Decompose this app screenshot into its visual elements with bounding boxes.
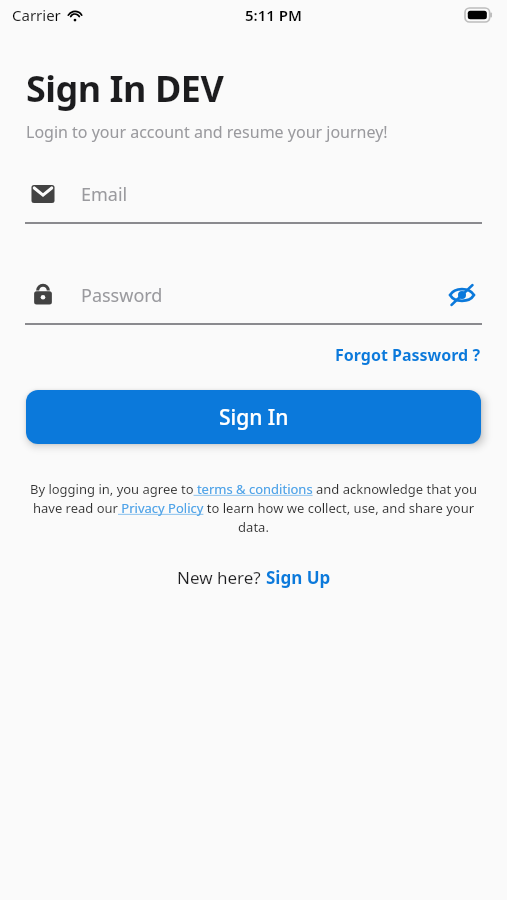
staticText: Password [81,283,163,308]
button[interactable]: Forgot Password ? [335,342,507,368]
staticText: 5:11 PM [245,5,302,25]
button[interactable]: Password [25,275,482,315]
staticText: Carrier [12,5,61,25]
staticText: Email [81,182,128,207]
button[interactable]: Sign Up [266,564,331,591]
staticText: New here? [177,566,266,589]
button[interactable]: Show password [442,275,482,315]
button[interactable]: Email [25,174,482,214]
staticText: Sign Up [266,566,331,589]
staticText: Sign In DEV [26,64,224,113]
button[interactable]: By logging in, you agree to terms & cond… [26,480,481,536]
staticText: Login to your account and resume your jo… [26,121,388,143]
button[interactable]: Sign In [26,390,481,444]
staticText: Forgot Password ? [335,344,481,366]
staticText: Sign In [219,403,289,432]
staticText: By logging in, you agree to terms & cond… [26,480,481,536]
